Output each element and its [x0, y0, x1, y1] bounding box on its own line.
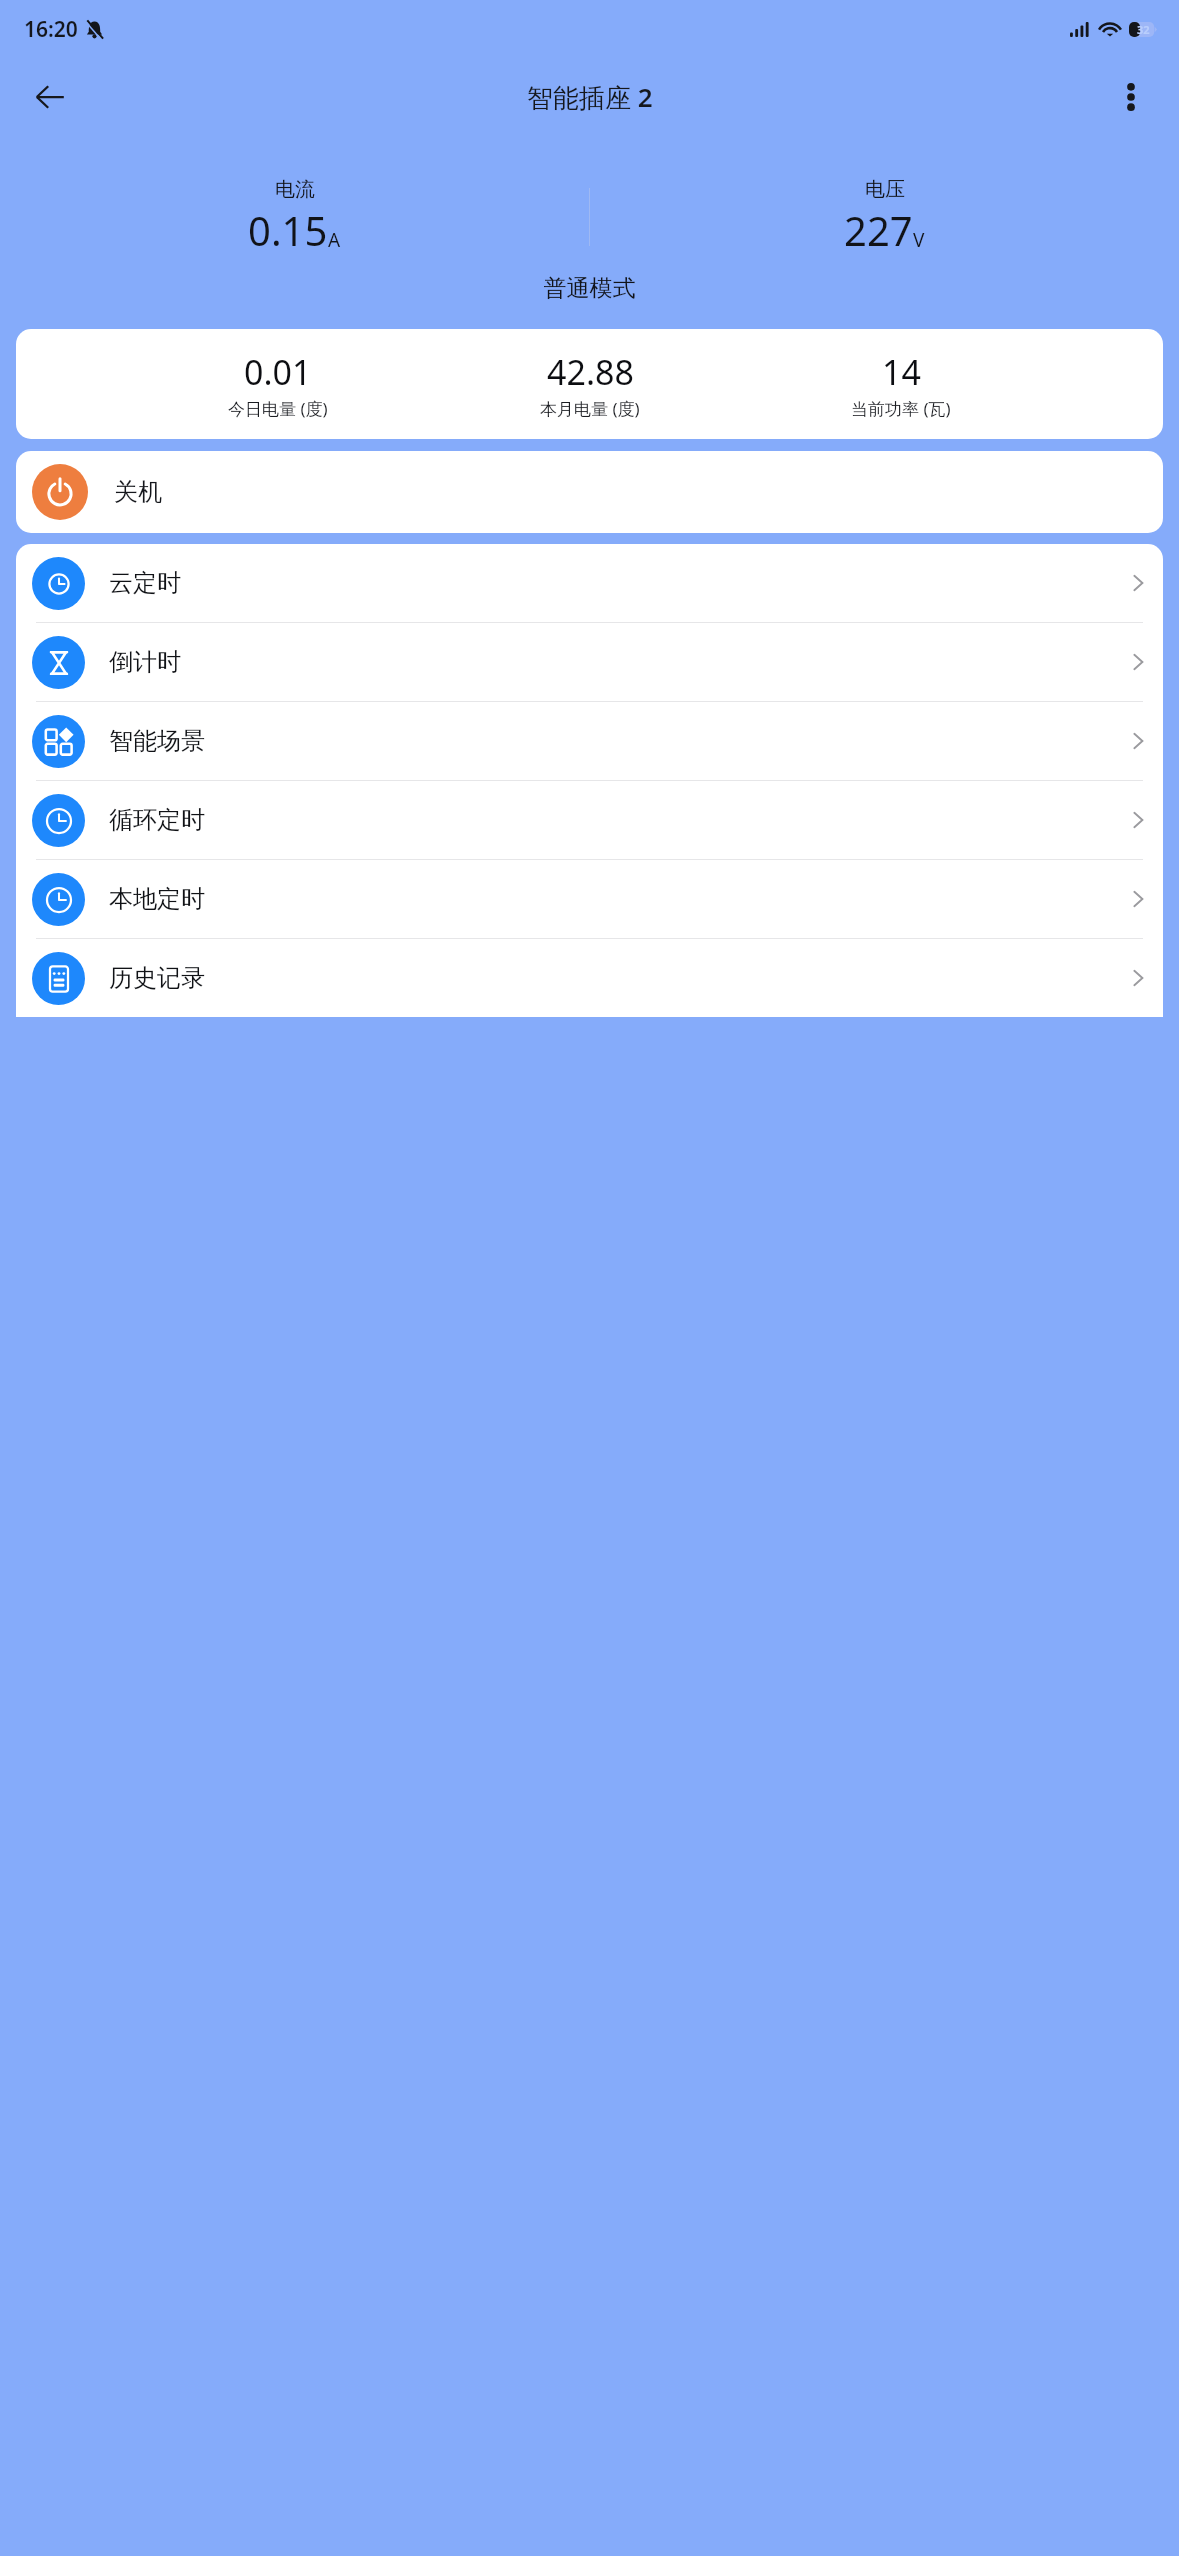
- staticText: 227: [844, 203, 913, 257]
- staticText: 本月电量 (度): [540, 397, 640, 420]
- button[interactable]: 本地定时: [16, 860, 1163, 938]
- staticText: 云定时: [109, 568, 1132, 598]
- button[interactable]: 历史记录: [16, 939, 1163, 1017]
- staticText: V: [913, 227, 925, 253]
- staticText: 当前功率 (瓦): [851, 397, 951, 420]
- staticText: A: [328, 227, 341, 253]
- staticText: 电压: [865, 177, 905, 202]
- staticText: 历史记录: [109, 963, 1132, 993]
- staticText: 智能插座 2: [527, 79, 653, 115]
- staticText: 电流: [275, 177, 315, 202]
- staticText: 今日电量 (度): [228, 397, 328, 420]
- staticText: 智能场景: [109, 726, 1132, 756]
- staticText: 倒计时: [109, 647, 1132, 677]
- button[interactable]: 循环定时: [16, 781, 1163, 859]
- button[interactable]: 关机: [16, 451, 1163, 533]
- staticText: 关机: [114, 477, 162, 507]
- staticText: 32: [1137, 22, 1150, 37]
- button[interactable]: 倒计时: [16, 623, 1163, 701]
- staticText: 42.88: [547, 349, 634, 395]
- button[interactable]: 智能场景: [16, 702, 1163, 780]
- staticText: 0.01: [244, 349, 312, 395]
- staticText: 0.15: [248, 203, 328, 257]
- staticText: 本地定时: [109, 884, 1132, 914]
- button[interactable]: 云定时: [16, 544, 1163, 622]
- button[interactable]: Back: [22, 69, 78, 125]
- staticText: 循环定时: [109, 805, 1132, 835]
- staticText: 普通模式: [0, 274, 1179, 303]
- staticText: 14: [882, 349, 921, 395]
- staticText: 16:20: [24, 15, 78, 44]
- button[interactable]: More options: [1105, 71, 1157, 123]
